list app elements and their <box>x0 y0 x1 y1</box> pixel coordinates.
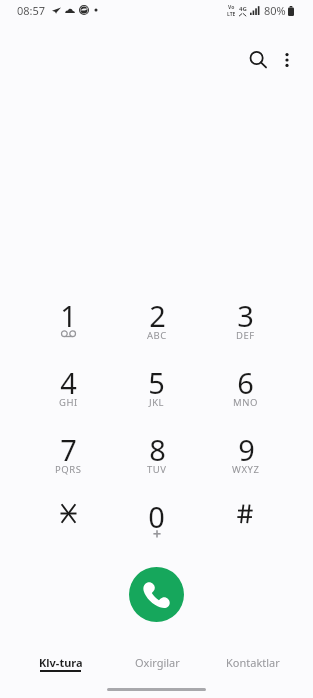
button[interactable]: 7 <box>24 415 112 482</box>
button[interactable]: 2 <box>112 281 201 348</box>
staticText: MNO <box>233 396 258 409</box>
staticText: 4G <box>239 5 247 13</box>
staticText: 9 <box>238 430 255 469</box>
button[interactable]: 9 <box>201 415 290 482</box>
staticText: 5 <box>148 363 165 402</box>
staticText: 0 <box>148 497 165 536</box>
staticText: 4 <box>60 363 77 402</box>
button[interactable]: 3 <box>201 281 290 348</box>
staticText: TUV <box>147 463 167 476</box>
staticText: Vo <box>228 4 235 11</box>
button[interactable]: Oxirgilar <box>109 654 205 676</box>
button[interactable]: More options <box>267 40 307 80</box>
button[interactable] <box>201 482 290 549</box>
staticText: 8 <box>149 430 166 469</box>
button[interactable]: Kontaktlar <box>205 654 301 676</box>
button[interactable] <box>24 482 112 549</box>
staticText: 08:57 <box>17 3 46 18</box>
staticText: Klv-tura <box>39 655 83 670</box>
staticText: 80% <box>264 3 286 18</box>
button[interactable]: 1 <box>24 281 112 348</box>
staticText: WXYZ <box>232 463 260 476</box>
button[interactable]: 5 <box>112 348 201 415</box>
button[interactable]: 8 <box>112 415 201 482</box>
staticText: 1 <box>60 296 77 335</box>
staticText: DEF <box>236 329 255 342</box>
staticText: JKL <box>149 396 165 409</box>
staticText: 2 <box>149 296 166 335</box>
button[interactable]: 0 <box>112 482 201 549</box>
staticText: PQRS <box>55 463 82 476</box>
staticText: 7 <box>60 430 77 469</box>
staticText: ABC <box>147 329 167 342</box>
staticText: LTE <box>227 11 236 18</box>
staticText: Oxirgilar <box>135 655 180 670</box>
staticText: GHI <box>59 396 78 409</box>
button[interactable]: Klv-tura <box>12 654 109 676</box>
button[interactable]: Call <box>129 567 184 622</box>
staticText: 6 <box>237 363 254 402</box>
button[interactable]: 4 <box>24 348 112 415</box>
staticText: Kontaktlar <box>226 655 280 670</box>
button[interactable]: 6 <box>201 348 290 415</box>
staticText: 3 <box>237 296 254 335</box>
button[interactable]: Search <box>238 40 278 80</box>
